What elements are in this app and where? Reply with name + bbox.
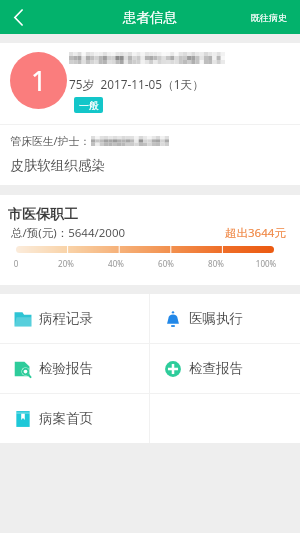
staticText: 100%: [241, 258, 291, 269]
staticText: 检查报告: [189, 360, 243, 377]
staticText: 1: [31, 62, 47, 99]
staticText: 0: [0, 258, 41, 269]
staticText: 皮肤软组织感染: [10, 157, 106, 174]
staticText: 20%: [41, 258, 91, 269]
staticText: 市医保职工: [8, 206, 78, 224]
staticText: 一般: [79, 99, 99, 112]
staticText: 病案首页: [39, 410, 93, 427]
staticText: 总/预(元)：5644/2000: [11, 225, 126, 241]
staticText: 40%: [91, 258, 141, 269]
button[interactable]: Back: [0, 0, 37, 34]
staticText: 既往病史: [251, 12, 287, 23]
button[interactable]: 既往病史: [241, 0, 300, 34]
button[interactable]: 检验报告: [0, 344, 149, 393]
button[interactable]: 医嘱执行: [150, 294, 300, 343]
staticText: 管床医生/护士：: [10, 133, 91, 148]
staticText: 检验报告: [39, 360, 93, 377]
button[interactable]: 检查报告: [150, 344, 300, 393]
staticText: 60%: [141, 258, 191, 269]
staticText: 医嘱执行: [189, 310, 243, 327]
staticText: 患者信息: [123, 9, 177, 26]
button[interactable]: 病程记录: [0, 294, 149, 343]
staticText: 超出3644元: [225, 225, 286, 241]
staticText: 80%: [191, 258, 241, 269]
button[interactable]: 病案首页: [0, 394, 149, 443]
staticText: 病程记录: [39, 310, 93, 327]
staticText: 75岁 2017-11-05（1天）: [69, 76, 205, 92]
